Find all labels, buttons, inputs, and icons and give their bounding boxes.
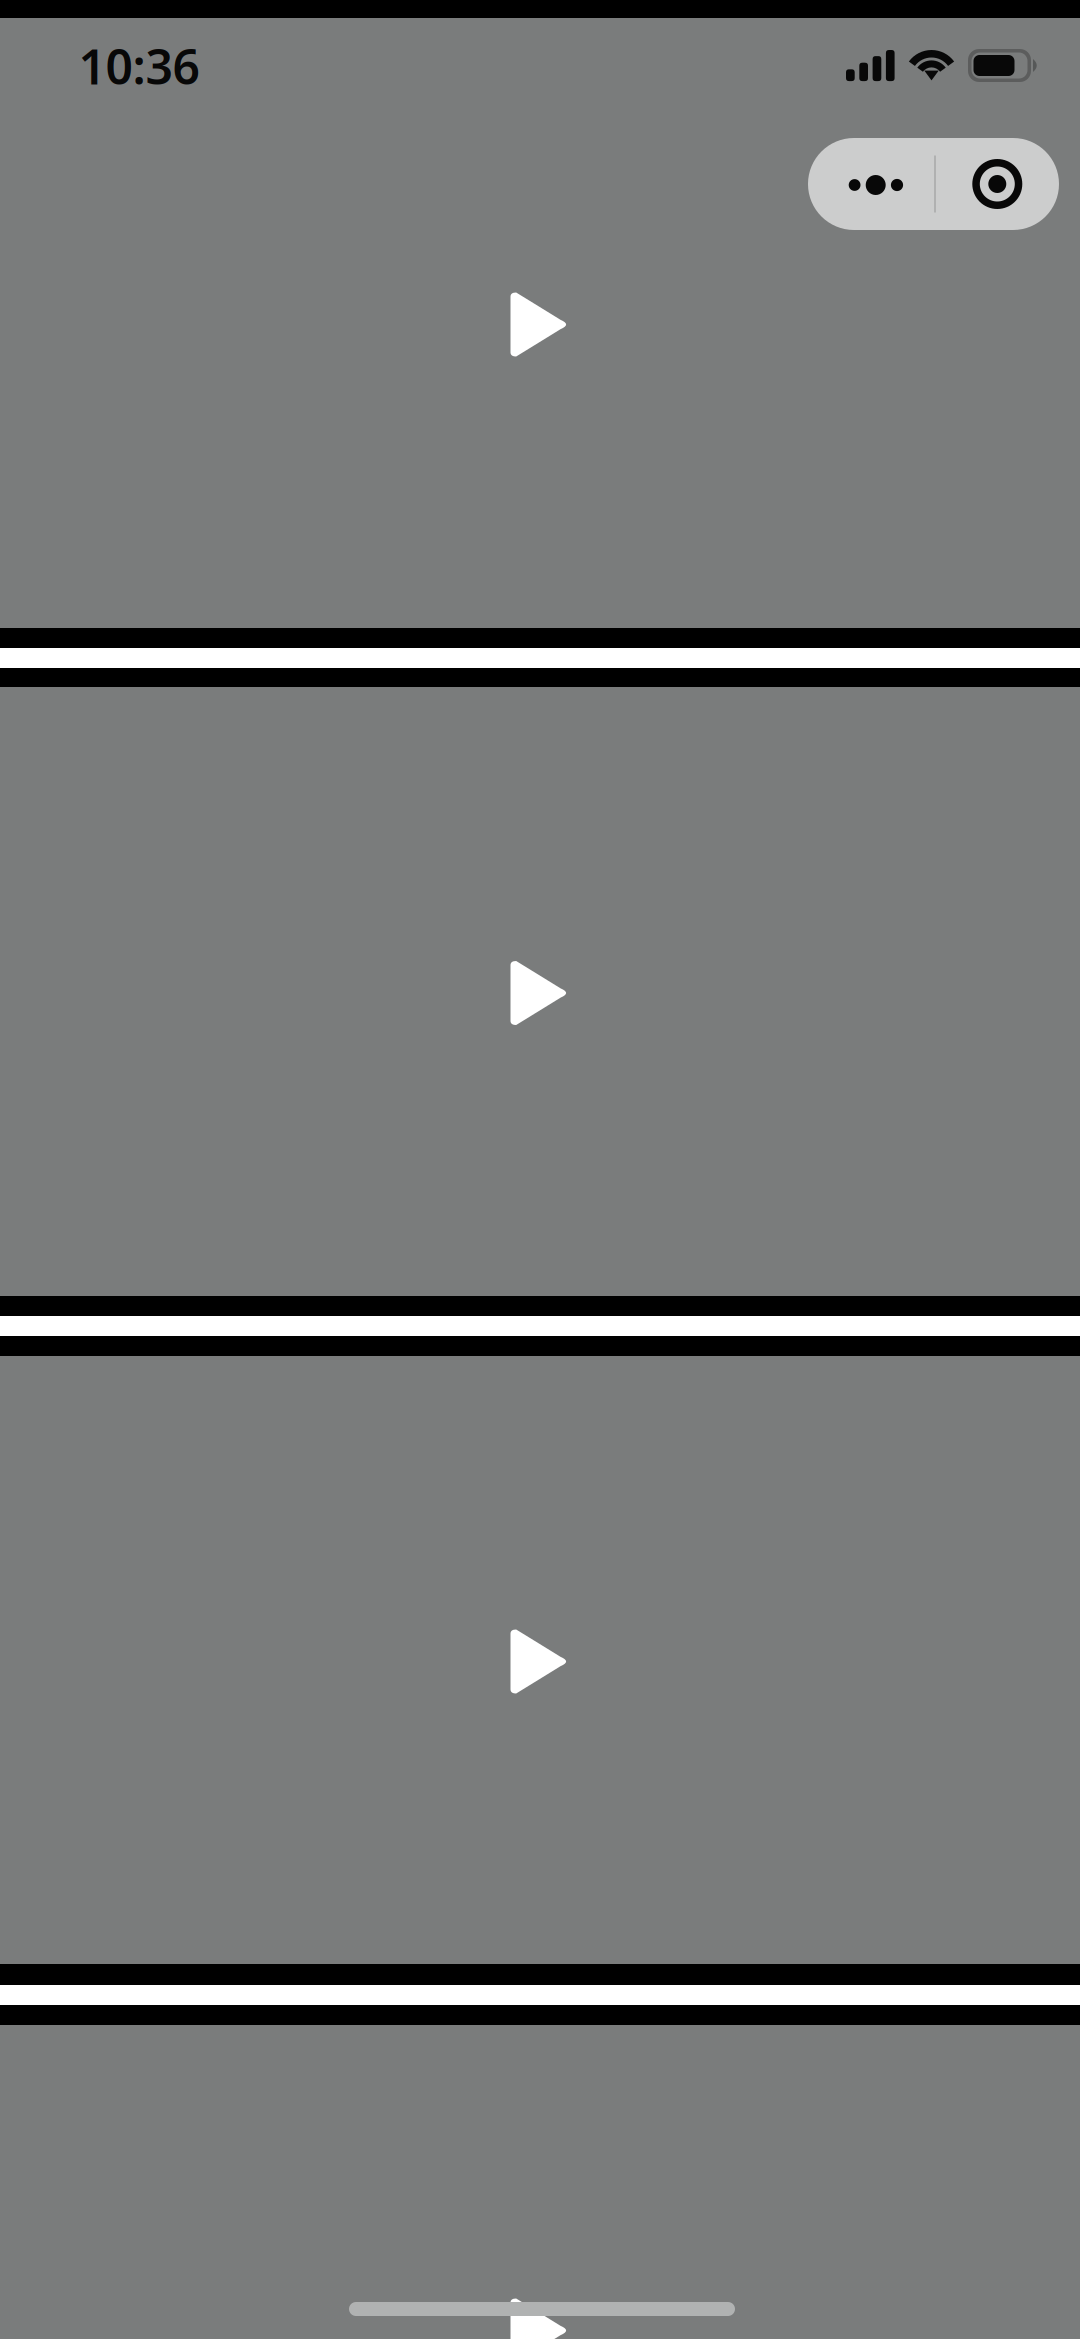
button[interactable]: Play video: [0, 2025, 1080, 2339]
button[interactable]: Play video: [0, 18, 1080, 628]
staticText: 10:36: [78, 34, 199, 98]
button[interactable]: Play video: [0, 687, 1080, 1296]
button[interactable]: Play video: [0, 1356, 1080, 1964]
button[interactable]: Close mini program: [936, 138, 1059, 230]
button[interactable]: More: [808, 138, 934, 230]
